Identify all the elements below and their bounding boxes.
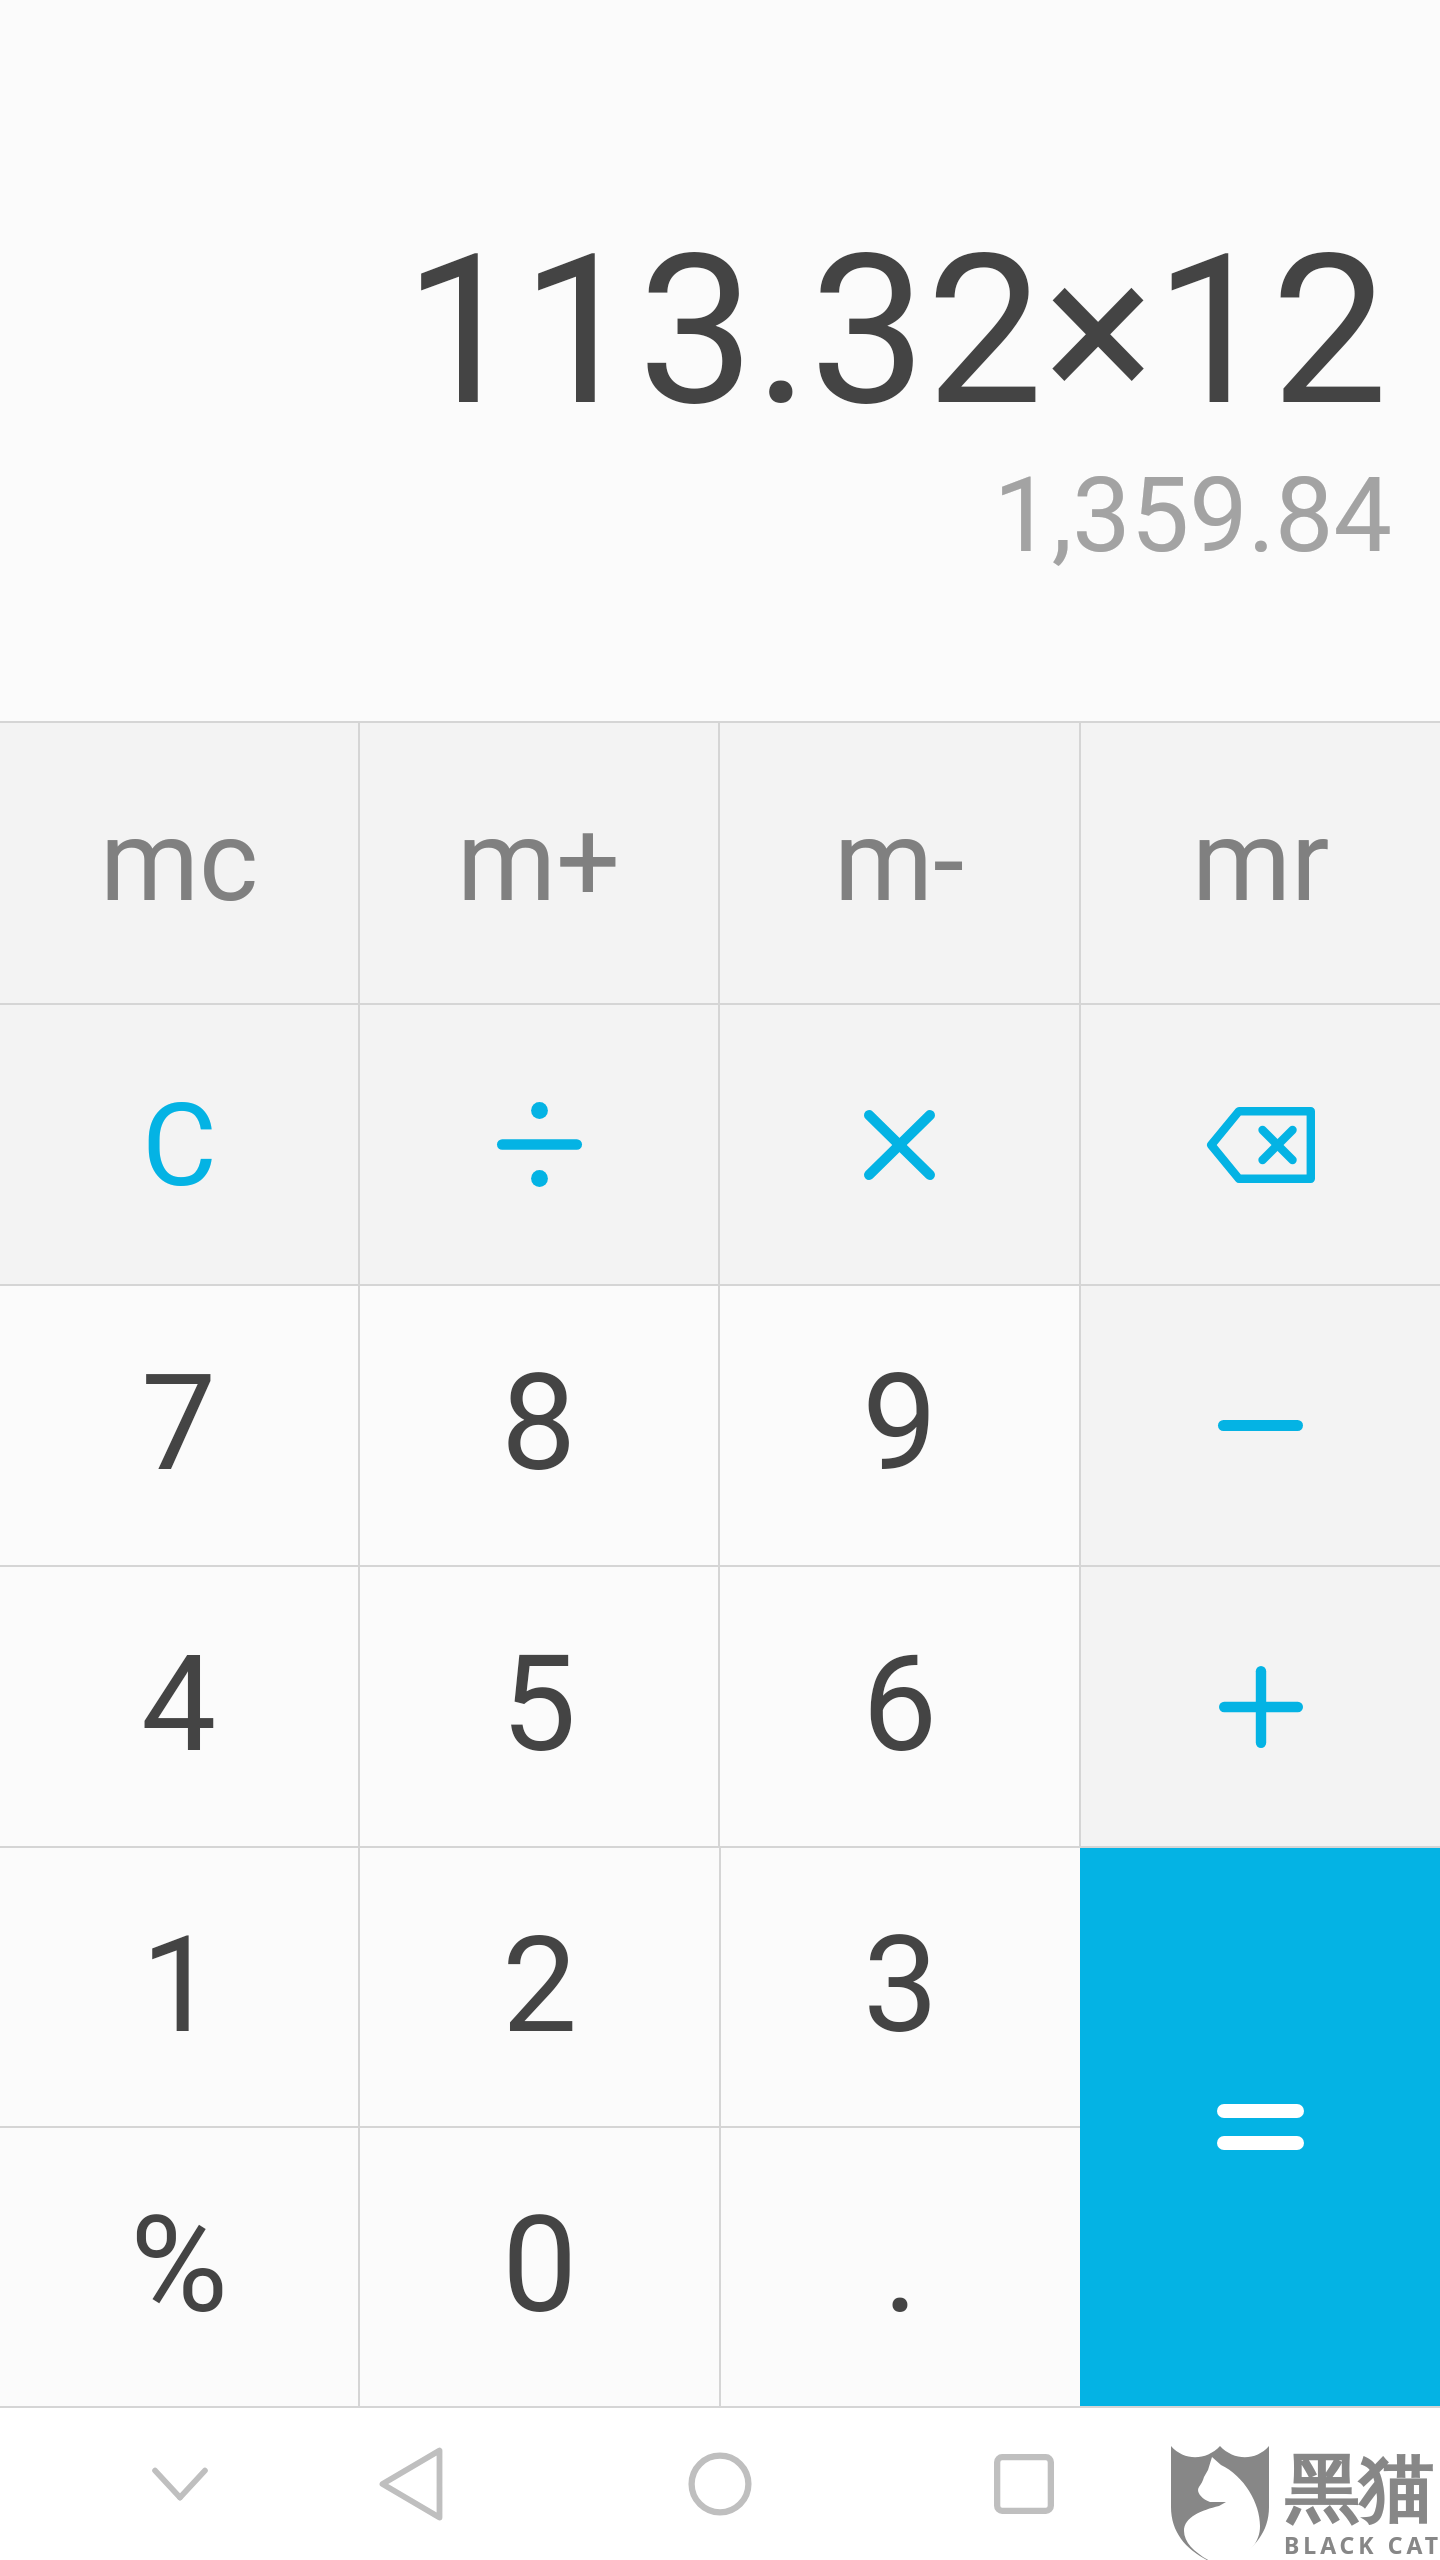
staticText: 5 xyxy=(501,1626,577,1783)
staticText: 113.32×12 xyxy=(0,209,1388,453)
button[interactable]: Recents xyxy=(974,2434,1074,2534)
button[interactable]: m- xyxy=(720,723,1079,1003)
button[interactable]: 2 xyxy=(360,1848,719,2126)
button[interactable]: Multiply xyxy=(720,1005,1079,1284)
button[interactable]: Plus xyxy=(1081,1567,1440,1846)
button[interactable]: 9 xyxy=(720,1286,1079,1565)
button[interactable]: 8 xyxy=(360,1286,718,1565)
staticText: 8 xyxy=(501,1345,577,1502)
button[interactable]: Minus xyxy=(1081,1286,1440,1565)
staticText: m+ xyxy=(457,795,621,927)
button[interactable]: Backspace xyxy=(1081,1005,1440,1284)
staticText: 3 xyxy=(863,1907,939,2064)
button[interactable]: 6 xyxy=(720,1567,1079,1846)
staticText: 1,359.84 xyxy=(0,455,1392,577)
staticText: BLACK CAT xyxy=(1284,2529,1440,2560)
button[interactable]: 7 xyxy=(0,1286,358,1565)
staticText: 2 xyxy=(502,1907,578,2064)
button[interactable]: 3 xyxy=(721,1848,1080,2126)
staticText: mc xyxy=(100,795,259,927)
button[interactable]: mr xyxy=(1081,723,1440,1003)
button[interactable]: mc xyxy=(0,723,358,1003)
button[interactable]: C xyxy=(0,1005,358,1284)
button[interactable]: 4 xyxy=(0,1567,358,1846)
button[interactable]: Hide keyboard xyxy=(130,2434,230,2534)
staticText: m- xyxy=(834,795,965,927)
button[interactable]: % xyxy=(0,2128,358,2406)
staticText: mr xyxy=(1192,795,1330,927)
staticText: . xyxy=(883,2187,919,2344)
button[interactable]: 5 xyxy=(360,1567,718,1846)
button[interactable]: . xyxy=(721,2128,1080,2406)
staticText: 1 xyxy=(141,1907,217,2064)
button[interactable]: Back xyxy=(361,2434,461,2534)
button[interactable]: 1 xyxy=(0,1848,358,2126)
staticText: 6 xyxy=(862,1626,938,1783)
staticText: 7 xyxy=(141,1345,217,1502)
button[interactable]: m+ xyxy=(360,723,718,1003)
staticText: 0 xyxy=(502,2187,578,2344)
button[interactable]: 0 xyxy=(360,2128,719,2406)
button[interactable]: Equals xyxy=(1080,1848,1440,2406)
button[interactable]: Divide xyxy=(360,1005,718,1284)
staticText: 4 xyxy=(141,1626,217,1783)
staticText: 9 xyxy=(862,1345,938,1502)
staticText: % xyxy=(130,2187,229,2344)
button[interactable]: Home xyxy=(670,2434,770,2534)
staticText: C xyxy=(142,1078,217,1213)
staticText: 黑猫 xyxy=(1284,2444,1432,2537)
